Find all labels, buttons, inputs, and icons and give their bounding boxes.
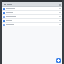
button[interactable]	[2, 11, 62, 14]
button[interactable]	[2, 15, 62, 18]
button[interactable]	[2, 19, 62, 22]
button[interactable]: Compose	[56, 58, 61, 63]
button[interactable]	[2, 7, 62, 10]
button[interactable]	[2, 23, 62, 26]
button[interactable]: Menu	[3, 3, 6, 6]
